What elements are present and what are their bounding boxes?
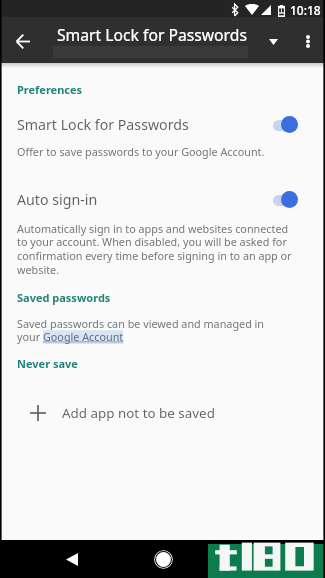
staticText: Never save: [17, 356, 78, 371]
button[interactable]: Smart Lock for Passwords: [0, 109, 325, 140]
staticText: Smart Lock for Passwords: [17, 115, 189, 134]
button[interactable]: Back: [57, 544, 87, 574]
staticText: Preferences: [17, 82, 83, 97]
staticText: Auto sign-in: [17, 190, 98, 209]
button[interactable]: Account dropdown: [261, 30, 285, 54]
button[interactable]: Navigate up: [10, 28, 36, 54]
staticText: Offer to save passwords to your Google A…: [17, 144, 292, 159]
staticText: Add app not to be saved: [62, 404, 215, 422]
button[interactable]: Saved passwords can be viewed and manage…: [17, 316, 272, 344]
button[interactable]: Add app not to be saved: [0, 396, 325, 430]
staticText: Automatically sign in to apps and websit…: [17, 221, 292, 277]
staticText: Smart Lock for Passwords: [57, 24, 247, 45]
staticText: Saved passwords: [17, 290, 111, 305]
button[interactable]: More options: [296, 29, 320, 53]
button[interactable]: Home: [148, 544, 178, 574]
button[interactable]: Auto sign-in: [0, 184, 325, 215]
staticText: 10:18: [290, 2, 321, 18]
